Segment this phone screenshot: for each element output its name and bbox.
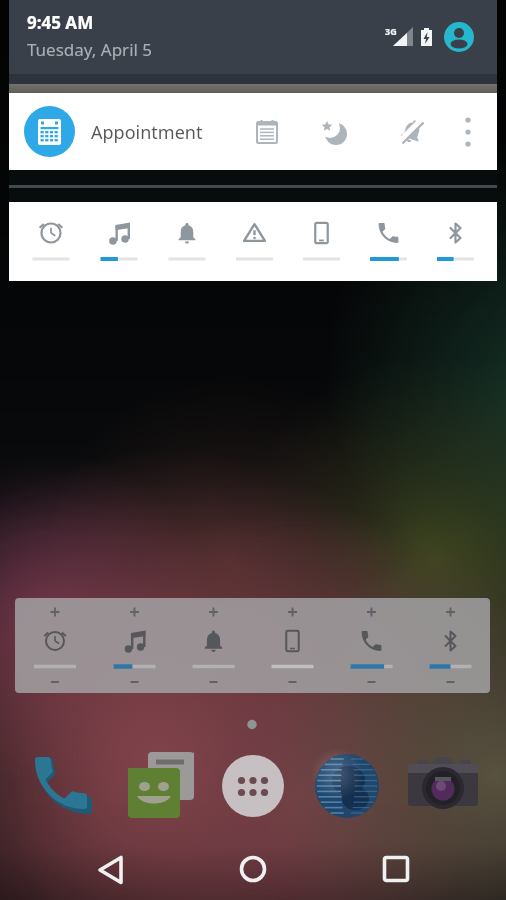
button[interactable] <box>411 598 490 693</box>
button[interactable] <box>126 748 196 818</box>
button[interactable] <box>288 202 355 281</box>
staticText: Tuesday, April 5 <box>27 38 153 61</box>
button[interactable] <box>88 853 136 887</box>
button[interactable] <box>174 598 253 693</box>
button[interactable] <box>435 13 483 61</box>
button[interactable] <box>312 110 356 154</box>
button[interactable] <box>221 202 288 281</box>
button[interactable] <box>332 598 411 693</box>
button[interactable] <box>15 598 95 693</box>
button[interactable] <box>253 598 332 693</box>
button[interactable] <box>448 110 488 154</box>
button[interactable] <box>390 110 434 154</box>
button[interactable] <box>153 202 221 281</box>
button[interactable] <box>95 598 174 693</box>
button[interactable] <box>315 754 379 818</box>
button[interactable] <box>245 110 289 154</box>
button[interactable] <box>372 852 420 886</box>
button[interactable] <box>85 202 153 281</box>
button[interactable] <box>355 202 422 281</box>
button[interactable] <box>17 202 85 281</box>
staticText: Appointment <box>91 120 203 145</box>
button[interactable] <box>222 755 284 817</box>
button[interactable] <box>422 202 489 281</box>
staticText: 9:45 AM <box>27 11 94 34</box>
button[interactable]: Appointment <box>9 93 497 170</box>
button[interactable] <box>407 750 479 812</box>
staticText: 3G <box>385 25 397 37</box>
button[interactable] <box>229 852 277 886</box>
button[interactable] <box>33 755 93 815</box>
